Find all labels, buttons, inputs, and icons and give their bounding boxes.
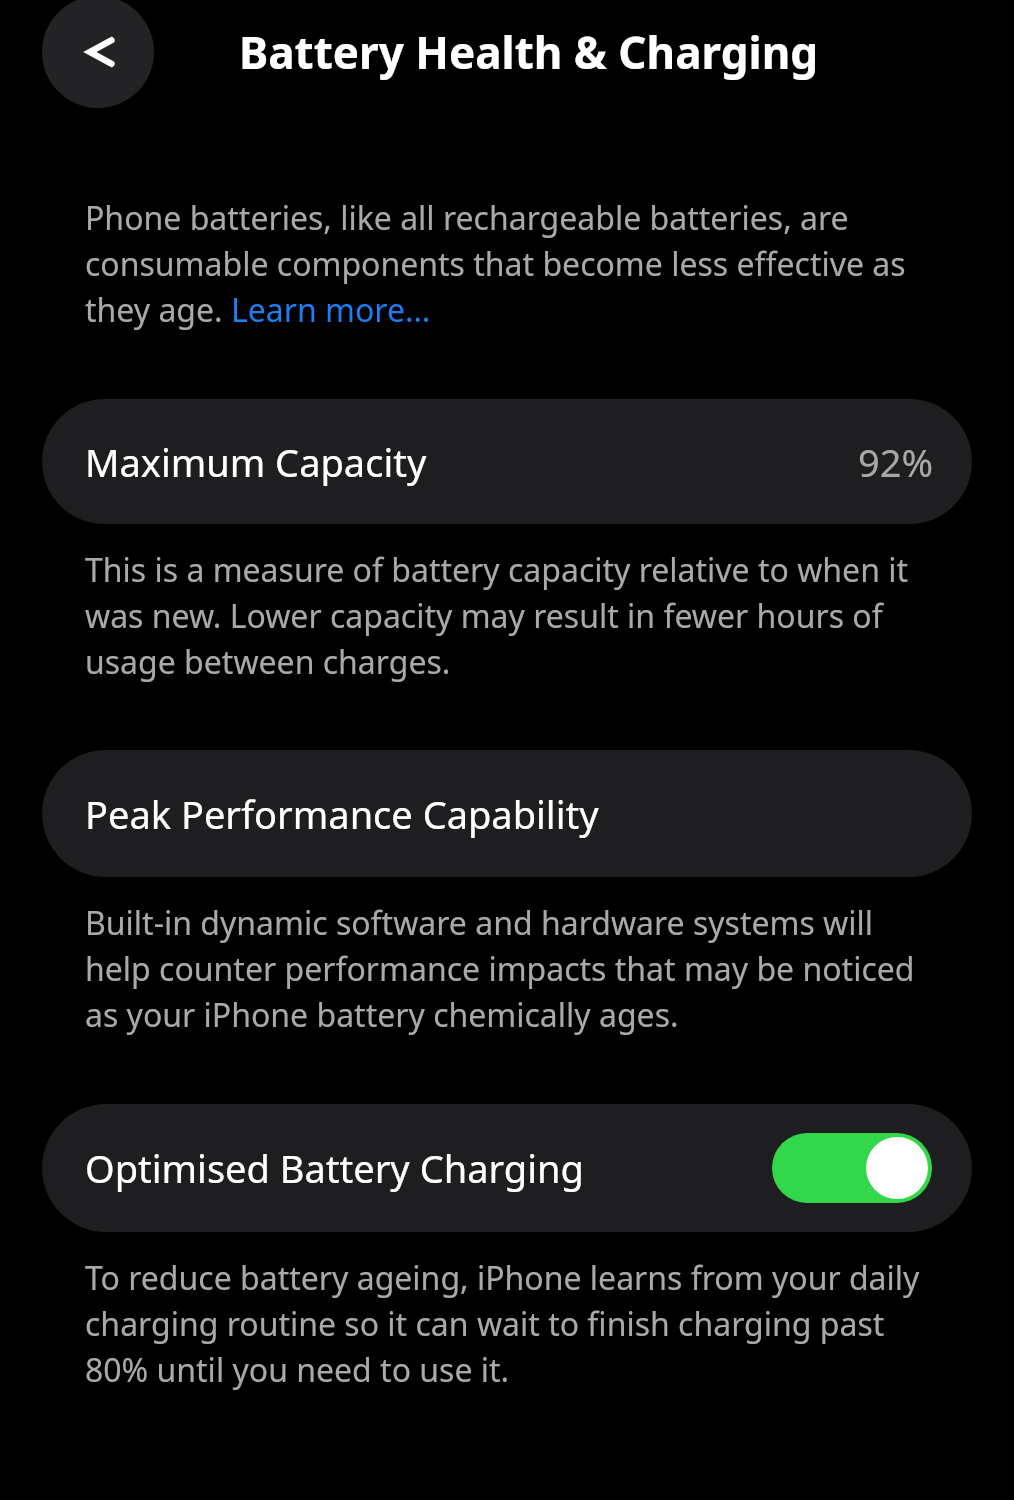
staticText: Optimised Battery Charging [85,1142,584,1194]
button[interactable]: Peak Performance Capability [42,750,972,877]
staticText: To reduce battery ageing, iPhone learns … [85,1256,930,1391]
staticText: This is a measure of battery capacity re… [85,548,930,683]
staticText: Battery Health & Charging [239,22,819,82]
staticText: Built-in dynamic software and hardware s… [85,901,930,1036]
staticText: 92% [858,436,934,488]
button[interactable]: Optimised Battery Charging toggle [772,1133,932,1203]
button[interactable]: Back [42,0,154,108]
staticText: Peak Performance Capability [85,788,599,840]
button[interactable]: Maximum Capacity [42,399,972,524]
staticText: Maximum Capacity [85,436,427,488]
button[interactable]: Phone batteries, like all rechargeable b… [85,196,930,331]
button[interactable]: Optimised Battery Charging [42,1104,972,1232]
